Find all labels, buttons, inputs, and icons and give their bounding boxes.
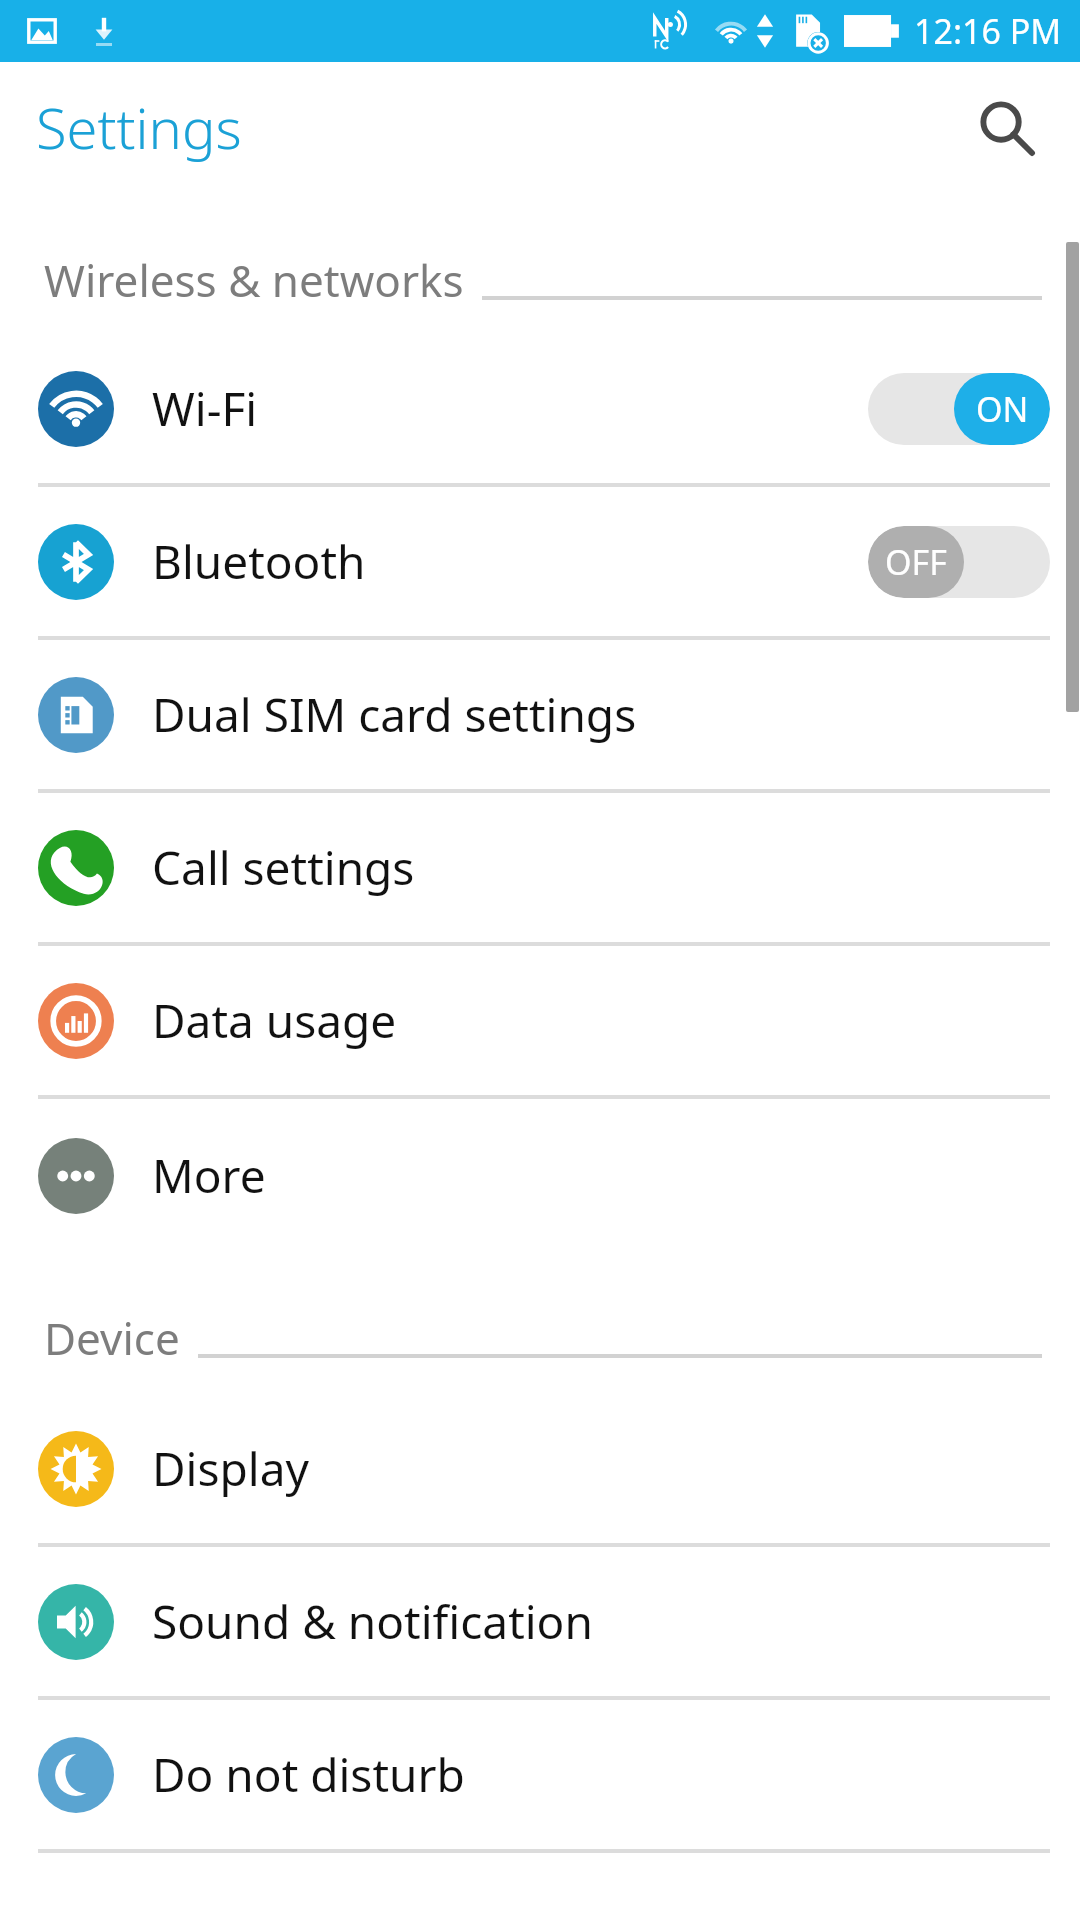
button[interactable]: Sound & notification (0, 1547, 1080, 1696)
button[interactable]: Display (0, 1394, 1080, 1543)
staticText: Wireless & networks (44, 250, 464, 310)
staticText: 12:16 PM (914, 8, 1062, 54)
staticText: ON (976, 386, 1029, 432)
button[interactable]: Turn off (868, 373, 1050, 445)
staticText: Dual SIM card settings (152, 683, 637, 746)
button[interactable]: Search (958, 79, 1054, 175)
button[interactable]: Do not disturb (0, 1700, 1080, 1849)
staticText: Data usage (152, 989, 397, 1052)
button[interactable]: Dual SIM card settings (0, 640, 1080, 789)
staticText: Wi-Fi (152, 377, 258, 440)
button[interactable]: Call settings (0, 793, 1080, 942)
button[interactable]: Turn on (868, 526, 1050, 598)
staticText: Device (44, 1308, 180, 1368)
staticText: Bluetooth (152, 530, 366, 593)
staticText: Sound & notification (152, 1590, 593, 1653)
button[interactable]: Data usage (0, 946, 1080, 1095)
button[interactable]: More (0, 1099, 1080, 1252)
staticText: Call settings (152, 836, 415, 899)
staticText: Display (152, 1437, 309, 1500)
staticText: Do not disturb (152, 1743, 465, 1806)
button[interactable]: Wi-Fi (0, 334, 1080, 483)
staticText: OFF (885, 539, 947, 585)
staticText: Settings (36, 89, 242, 165)
staticText: More (152, 1144, 266, 1207)
button[interactable]: Bluetooth (0, 487, 1080, 636)
